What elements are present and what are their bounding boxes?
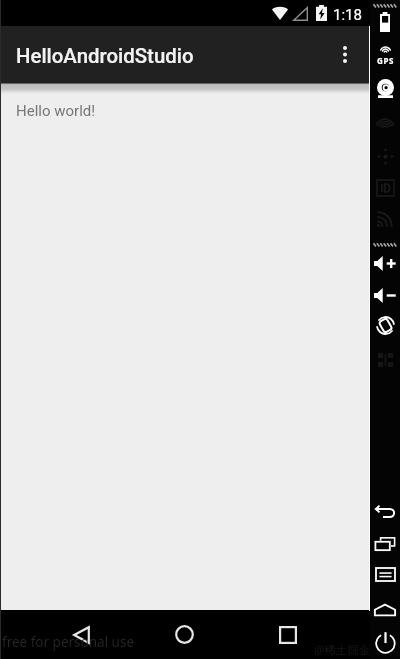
button[interactable]: Phone ID bbox=[370, 179, 400, 197]
button[interactable]: Rotate bbox=[370, 316, 400, 335]
button[interactable]: Power off bbox=[370, 632, 400, 654]
button[interactable]: Volume up bbox=[370, 255, 400, 271]
button[interactable]: More options bbox=[327, 36, 363, 72]
button[interactable]: Overview bbox=[370, 536, 400, 551]
button[interactable]: Cast bbox=[370, 210, 400, 228]
button[interactable]: Battery bbox=[370, 11, 400, 33]
button[interactable]: Location bbox=[370, 46, 400, 64]
staticText: 1:18 bbox=[333, 6, 362, 24]
staticText: @稀土掘金技术社区 bbox=[314, 642, 400, 658]
button[interactable]: Menu bbox=[370, 567, 400, 581]
staticText: GPS bbox=[377, 55, 394, 64]
staticText: Hello world! bbox=[16, 102, 96, 120]
button[interactable]: Fingerprint bbox=[370, 112, 400, 131]
staticText: free for personal use bbox=[2, 633, 135, 651]
staticText: HelloAndroidStudio bbox=[16, 44, 194, 68]
button[interactable]: Home bbox=[160, 610, 209, 659]
button[interactable]: Camera bbox=[370, 78, 400, 98]
button[interactable]: Volume down bbox=[370, 287, 400, 303]
button[interactable]: Recent apps bbox=[263, 610, 312, 659]
button[interactable]: Back bbox=[57, 610, 106, 659]
button[interactable]: Home bbox=[370, 603, 400, 616]
button[interactable]: Resize bbox=[370, 351, 400, 368]
button[interactable]: Directional pad bbox=[370, 147, 400, 166]
button[interactable]: Back bbox=[370, 502, 400, 519]
